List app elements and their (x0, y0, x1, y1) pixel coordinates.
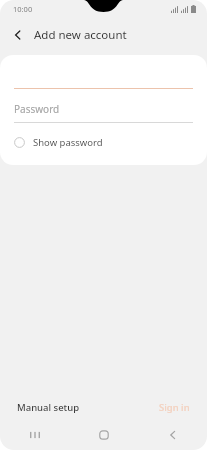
button[interactable]: Back (138, 420, 207, 450)
button[interactable]: Home (69, 420, 138, 450)
staticText: Password (14, 102, 60, 116)
button[interactable]: Back (8, 25, 28, 45)
button[interactable]: Password (0, 101, 207, 123)
button[interactable]: Sign in (151, 397, 207, 418)
button[interactable]: Manual setup (0, 397, 88, 418)
staticText: 10:00 (13, 4, 33, 14)
button[interactable] (0, 55, 207, 89)
staticText: Manual setup (17, 401, 80, 414)
staticText: Add new account (34, 27, 127, 43)
button[interactable]: Show password (0, 131, 207, 153)
button[interactable]: Recents (0, 420, 69, 450)
staticText: Sign in (159, 401, 190, 414)
staticText: Show password (33, 136, 103, 149)
